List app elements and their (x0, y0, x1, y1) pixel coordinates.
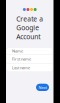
staticText: Create a Google Account (16, 14, 43, 41)
staticText: First name (12, 56, 31, 62)
button[interactable]: Next (36, 84, 49, 91)
staticText: Name (12, 48, 23, 54)
staticText: Next (38, 85, 46, 90)
staticText: Last name (12, 65, 30, 70)
